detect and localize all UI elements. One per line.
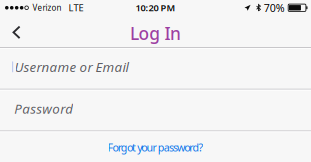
staticText: 10:20 PM [135,2,175,14]
button[interactable]: Username or Email [0,49,311,89]
button[interactable]: Password [0,91,311,130]
staticText: Log In [130,22,181,45]
staticText: Verizon [32,2,61,13]
button[interactable]: Forgot your password? [0,132,311,162]
staticText: Username or Email [15,58,129,76]
staticText: Password [14,100,73,117]
staticText: Forgot your password? [107,140,203,155]
button[interactable]: Back [0,18,33,44]
staticText: 70% [264,1,285,15]
staticText: LTE [68,2,83,14]
